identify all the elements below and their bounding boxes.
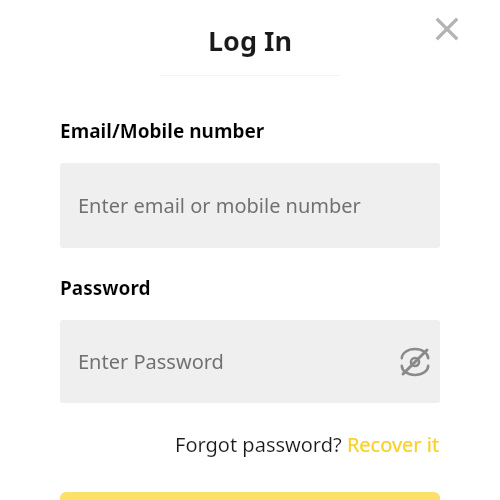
staticText: Password <box>60 275 151 301</box>
button[interactable]: Log In <box>60 492 440 500</box>
staticText: Enter Password <box>78 348 224 375</box>
button[interactable]: Close <box>425 7 469 51</box>
button[interactable]: Forgot password? Recover it <box>175 431 440 458</box>
staticText: Enter email or mobile number <box>78 192 361 219</box>
staticText: Forgot password? Recover it <box>175 431 440 458</box>
button[interactable]: Enter email or mobile number <box>60 163 440 248</box>
staticText: Email/Mobile number <box>60 118 265 144</box>
button[interactable]: Show password <box>390 337 440 387</box>
button[interactable]: Enter Password <box>60 320 440 403</box>
staticText: Log In <box>208 22 293 59</box>
